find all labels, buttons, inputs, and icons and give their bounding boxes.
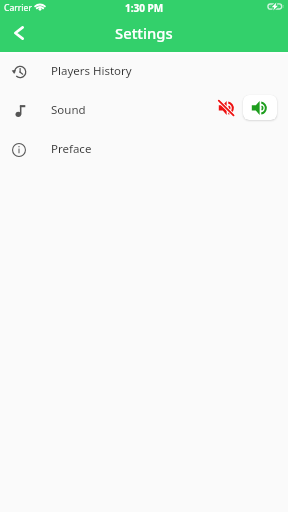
button[interactable]: Preface — [0, 130, 288, 169]
staticText: Players History — [51, 63, 132, 79]
button[interactable]: Players History — [0, 52, 288, 91]
staticText: 1:30 PM — [125, 1, 164, 15]
button[interactable]: Sound — [0, 91, 288, 130]
button[interactable]: Sound on — [243, 95, 277, 120]
staticText: Settings — [115, 23, 173, 43]
staticText: Carrier — [4, 2, 32, 14]
button[interactable]: Mute sound — [209, 95, 243, 120]
staticText: Preface — [51, 141, 92, 157]
button[interactable]: Back — [0, 16, 38, 50]
staticText: Sound — [51, 102, 86, 118]
